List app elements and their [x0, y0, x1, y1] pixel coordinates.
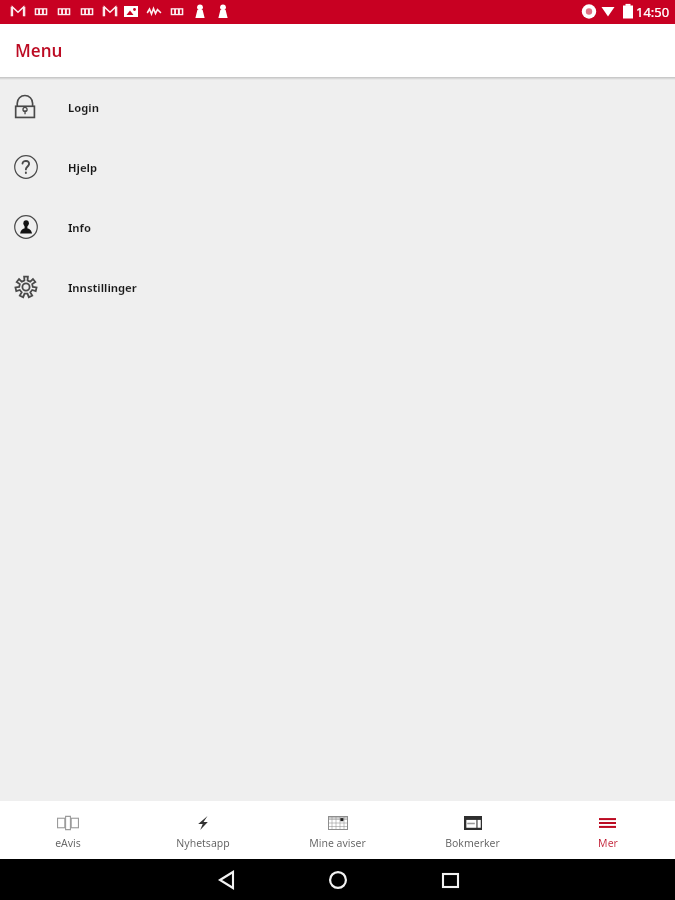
- staticText: Info: [68, 220, 91, 235]
- staticText: Menu: [15, 39, 63, 62]
- staticText: Innstillinger: [68, 280, 137, 295]
- staticText: Login: [68, 100, 99, 115]
- button[interactable]: Bokmerker: [405, 801, 540, 859]
- button[interactable]: Innstillinger: [0, 257, 675, 317]
- staticText: eAvis: [55, 836, 81, 850]
- button[interactable]: Mer: [540, 801, 675, 859]
- staticText: 14:50: [636, 3, 670, 21]
- button[interactable]: Login: [0, 77, 675, 137]
- button[interactable]: Recent apps: [432, 862, 468, 898]
- button[interactable]: Hjelp: [0, 137, 675, 197]
- staticText: Hjelp: [68, 160, 97, 175]
- button[interactable]: Nyhetsapp: [135, 801, 270, 859]
- button[interactable]: Info: [0, 197, 675, 257]
- button[interactable]: Home: [320, 862, 356, 898]
- staticText: Bokmerker: [445, 836, 500, 850]
- staticText: Nyhetsapp: [176, 836, 230, 850]
- staticText: Mine aviser: [309, 836, 366, 850]
- staticText: Mer: [598, 836, 618, 850]
- button[interactable]: eAvis: [0, 801, 135, 859]
- button[interactable]: Mine aviser: [270, 801, 405, 859]
- button[interactable]: Back: [208, 862, 244, 898]
